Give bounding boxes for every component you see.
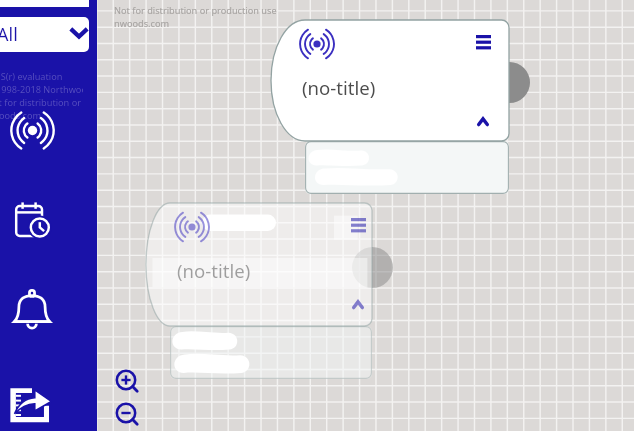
staticText: nwoods.com [0, 109, 42, 122]
button[interactable]: Menu [146, 203, 372, 326]
staticText: All [0, 22, 18, 47]
staticText: nwoods.com [114, 17, 170, 30]
staticText: Not for distribution or production use [114, 4, 277, 17]
button[interactable]: Menu [271, 20, 509, 141]
button[interactable]: Schedule [14, 200, 54, 240]
button[interactable]: Zoom out [112, 399, 140, 427]
button[interactable]: Menu [471, 31, 495, 55]
staticText: (no-title) [302, 75, 376, 100]
staticText: (c)1998-2018 Northwoods Software [0, 83, 83, 96]
button[interactable]: Notifications [9, 287, 55, 335]
button[interactable]: Zoom in [112, 366, 140, 394]
staticText: GoJS(r) evaluation [0, 70, 63, 83]
button[interactable]: All [0, 17, 89, 52]
staticText: Not for distribution or production [0, 96, 83, 109]
button[interactable]: Broadcast [9, 108, 56, 153]
staticText: (no-title) [177, 258, 251, 283]
button[interactable]: Share [9, 385, 55, 425]
button[interactable]: Menu [346, 214, 370, 238]
button[interactable]: Collapse [348, 296, 368, 316]
button[interactable]: Collapse [473, 113, 493, 133]
